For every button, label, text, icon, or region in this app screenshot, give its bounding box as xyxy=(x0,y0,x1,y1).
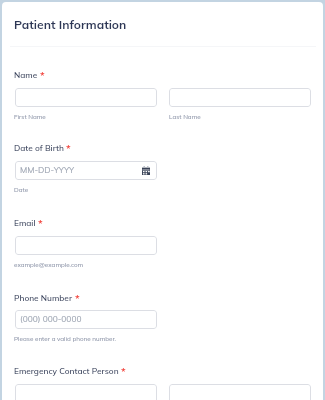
staticText: Name xyxy=(14,70,38,80)
staticText: MM-DD-YYYY xyxy=(20,165,75,176)
button[interactable] xyxy=(169,88,311,107)
staticText: Phone Number xyxy=(14,293,73,303)
staticText: Date of Birth xyxy=(14,143,64,153)
staticText: Patient Information xyxy=(14,17,127,32)
staticText: Last Name xyxy=(169,113,201,121)
staticText: Please enter a valid phone number. xyxy=(14,335,117,343)
button[interactable] xyxy=(15,236,157,255)
button[interactable]: (000) 000-0000 xyxy=(15,310,157,329)
staticText: Email xyxy=(14,218,36,228)
button[interactable] xyxy=(169,384,311,400)
staticText: * xyxy=(40,69,45,82)
button[interactable] xyxy=(15,88,157,107)
staticText: example@example.com xyxy=(14,261,84,269)
button[interactable]: Open calendar xyxy=(139,164,152,177)
button[interactable]: MM-DD-YYYY xyxy=(15,161,157,180)
staticText: Emergency Contact Person xyxy=(14,366,119,376)
staticText: * xyxy=(121,365,126,378)
staticText: * xyxy=(38,217,43,230)
staticText: Date xyxy=(14,186,29,194)
staticText: * xyxy=(66,142,71,155)
staticText: First Name xyxy=(14,113,46,121)
staticText: * xyxy=(75,292,80,305)
staticText: (000) 000-0000 xyxy=(20,314,82,325)
button[interactable] xyxy=(15,384,157,400)
